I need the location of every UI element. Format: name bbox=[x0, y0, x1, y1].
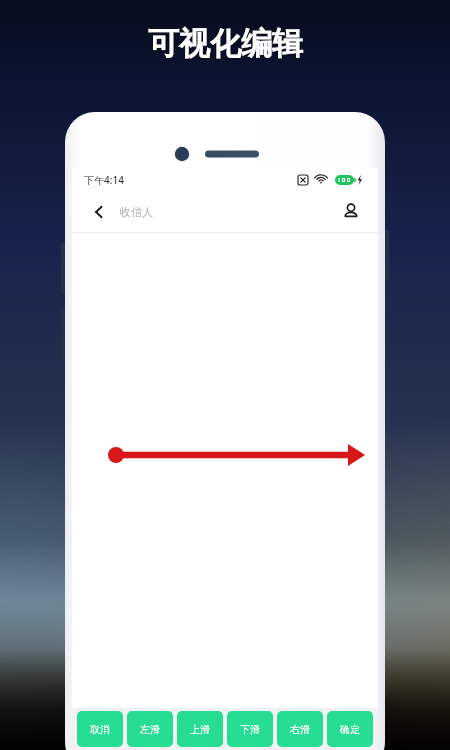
staticText: 左滑 bbox=[140, 723, 160, 736]
button[interactable]: 收信人 bbox=[120, 197, 336, 227]
staticText: 下滑 bbox=[240, 723, 260, 736]
button[interactable]: 下滑 bbox=[227, 711, 273, 747]
staticText: 可视化编辑 bbox=[147, 25, 302, 64]
button[interactable]: 左滑 bbox=[127, 711, 173, 747]
staticText: 可视化编辑 bbox=[147, 23, 302, 62]
staticText: 下午4:14 bbox=[84, 173, 124, 187]
staticText: 可视化编辑 bbox=[148, 24, 303, 63]
staticText: 可视化编辑 bbox=[149, 23, 304, 62]
staticText: 可视化编辑 bbox=[148, 26, 303, 65]
staticText: 可视化编辑 bbox=[146, 24, 301, 63]
button[interactable]: 取消 bbox=[77, 711, 123, 747]
staticText: 可视化编辑 bbox=[149, 25, 304, 64]
staticText: 收信人 bbox=[120, 205, 153, 219]
staticText: 取消 bbox=[90, 723, 110, 736]
staticText: 上滑 bbox=[190, 723, 210, 736]
button[interactable]: Back bbox=[84, 197, 114, 227]
button[interactable]: 右滑 bbox=[277, 711, 323, 747]
staticText: 可视化编辑 bbox=[148, 22, 303, 61]
staticText: 右滑 bbox=[290, 723, 310, 736]
staticText: 确定 bbox=[340, 723, 360, 736]
button[interactable]: Contacts bbox=[336, 197, 366, 227]
button[interactable]: 上滑 bbox=[177, 711, 223, 747]
staticText: 可视化编辑 bbox=[150, 24, 305, 63]
button[interactable]: 确定 bbox=[327, 711, 373, 747]
